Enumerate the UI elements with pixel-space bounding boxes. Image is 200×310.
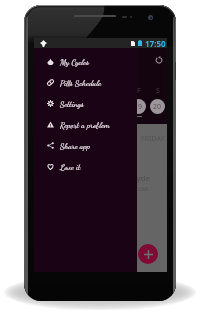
staticText: Day 5 of your cycle: [84, 173, 150, 183]
staticText: Love it: [60, 162, 81, 172]
staticText: 16: [77, 102, 86, 112]
button[interactable]: Love it: [34, 156, 137, 177]
staticText: Low: [135, 184, 149, 194]
staticText: FRIDAY: [141, 134, 165, 144]
staticText: M: [59, 86, 66, 96]
button[interactable]: F: [129, 76, 148, 124]
button[interactable]: Settings: [34, 93, 137, 114]
button[interactable]: Reset cycle: [152, 53, 165, 66]
button[interactable]: My Cycles: [34, 51, 137, 72]
staticText: 19: [134, 102, 143, 112]
staticText: 14: [39, 102, 48, 112]
staticText: S: [156, 86, 160, 96]
button[interactable]: S: [34, 76, 53, 124]
button[interactable]: T: [72, 76, 91, 124]
button[interactable]: M: [53, 76, 72, 124]
staticText: Share app: [60, 141, 90, 151]
staticText: 15: [58, 102, 67, 112]
staticText: My Cycles: [60, 57, 90, 67]
staticText: Pills Schedule: [60, 78, 102, 88]
staticText: 20: [153, 102, 162, 112]
staticText: 17:50: [145, 38, 166, 48]
staticText: Report a problem: [60, 120, 110, 130]
button[interactable]: W: [91, 76, 110, 124]
button[interactable]: S: [148, 76, 167, 124]
button[interactable]: Add entry: [138, 244, 158, 264]
button[interactable]: Report a problem: [34, 114, 137, 135]
button[interactable]: Share app: [34, 135, 137, 156]
button[interactable]: Pills Schedule: [34, 72, 137, 93]
staticText: Settings: [60, 99, 84, 109]
staticText: F: [137, 86, 141, 96]
